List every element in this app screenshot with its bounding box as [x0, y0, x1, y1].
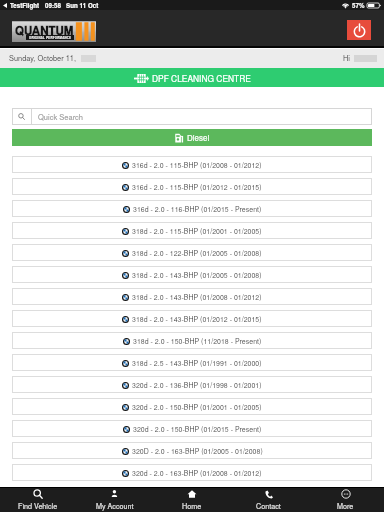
staticText: Contact	[256, 501, 281, 511]
button[interactable]: 318d - 2.0 - 143-BHP (01/2008 - 01/2012)	[12, 288, 372, 305]
staticText: 318d - 2.0 - 150-BHP (11/2018 - Present)	[133, 336, 262, 346]
staticText: DPF CLEANING CENTRE	[152, 72, 251, 84]
button[interactable]: 318d - 2.0 - 143-BHP (01/2005 - 01/2008)	[12, 266, 372, 283]
staticText: 318d - 2.0 - 143-BHP (01/2012 - 01/2015)	[132, 314, 262, 324]
staticText: 318d - 2.0 - 122-BHP (01/2005 - 01/2008)	[132, 248, 262, 258]
staticText: QUANTUM	[15, 22, 74, 38]
button[interactable]: My Account	[76, 488, 153, 512]
button[interactable]: Home	[153, 488, 230, 512]
button[interactable]: Diesel	[12, 129, 372, 146]
button[interactable]: Quantum logo	[12, 21, 96, 42]
staticText: 320d - 2.0 - 163-BHP (01/2008 - 01/2012)	[132, 468, 262, 478]
button[interactable]: 316d - 2.0 - 115-BHP (01/2008 - 01/2012)	[12, 156, 372, 173]
staticText: 09:58	[45, 1, 61, 10]
staticText: 318d - 2.0 - 143-BHP (01/2005 - 01/2008)	[132, 270, 262, 280]
staticText: 320d - 2.0 - 150-BHP (01/2001 - 01/2005)	[132, 402, 262, 412]
staticText: Sun 11 Oct	[66, 1, 99, 10]
staticText: More	[337, 501, 354, 511]
staticText: 320D - 2.0 - 163-BHP (01/2005 - 01/2008)	[132, 446, 263, 456]
staticText: Hi	[343, 53, 350, 64]
staticText: 318d - 2.0 - 115-BHP (01/2001 - 01/2005)	[132, 226, 262, 236]
staticText: My Account	[96, 501, 134, 511]
button[interactable]: Contact	[230, 488, 307, 512]
button[interactable]: More	[307, 488, 384, 512]
staticText: 320d - 2.0 - 136-BHP (01/1998 - 01/2001)	[132, 380, 262, 390]
staticText: TestFlight	[10, 1, 40, 10]
button[interactable]: 320d - 2.0 - 163-BHP (01/2008 - 01/2012)	[12, 464, 372, 481]
staticText: Sunday, October 11,	[9, 53, 77, 64]
button[interactable]: 316d - 2.0 - 115-BHP (01/2012 - 01/2015)	[12, 178, 372, 195]
staticText: 318d - 2.5 - 143-BHP (01/1991 - 01/2000)	[132, 358, 262, 368]
staticText: 316d - 2.0 - 115-BHP (01/2012 - 01/2015)	[132, 182, 262, 192]
button[interactable]: 320d - 2.0 - 150-BHP (01/2001 - 01/2005)	[12, 398, 372, 415]
staticText: ORIGINAL PERFORMANCE	[29, 36, 72, 40]
staticText: 316d - 2.0 - 115-BHP (01/2008 - 01/2012)	[132, 160, 262, 170]
staticText: 57%	[352, 1, 365, 10]
button[interactable]: 318d - 2.5 - 143-BHP (01/1991 - 01/2000)	[12, 354, 372, 371]
button[interactable]: 316d - 2.0 - 116-BHP (01/2015 - Present)	[12, 200, 372, 217]
staticText: Quick Search	[38, 111, 84, 122]
button[interactable]: 318d - 2.0 - 143-BHP (01/2012 - 01/2015)	[12, 310, 372, 327]
button[interactable]: 320d - 2.0 - 150-BHP (01/2015 - Present)	[12, 420, 372, 437]
staticText: Diesel	[187, 132, 210, 143]
staticText: 318d - 2.0 - 143-BHP (01/2008 - 01/2012)	[132, 292, 262, 302]
staticText: 316d - 2.0 - 116-BHP (01/2015 - Present)	[133, 204, 262, 214]
staticText: 320d - 2.0 - 150-BHP (01/2015 - Present)	[133, 424, 262, 434]
button[interactable]: 318d - 2.0 - 150-BHP (11/2018 - Present)	[12, 332, 372, 349]
button[interactable]: 318d - 2.0 - 115-BHP (01/2001 - 01/2005)	[12, 222, 372, 239]
staticText: Home	[182, 501, 202, 511]
button[interactable]: 320d - 2.0 - 136-BHP (01/1998 - 01/2001)	[12, 376, 372, 393]
button[interactable]: Quick Search	[12, 108, 372, 125]
button[interactable]: 320D - 2.0 - 163-BHP (01/2005 - 01/2008)	[12, 442, 372, 459]
staticText: Find Vehicle	[18, 501, 58, 511]
button[interactable]: 318d - 2.0 - 122-BHP (01/2005 - 01/2008)	[12, 244, 372, 261]
button[interactable]: Find Vehicle	[0, 488, 76, 512]
button[interactable]: Log out	[347, 20, 371, 40]
